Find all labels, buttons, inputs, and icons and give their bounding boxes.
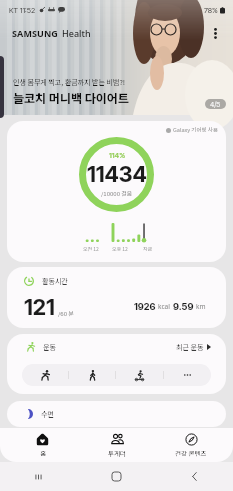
staticText: 활동시간 <box>42 276 68 286</box>
staticText: 오후 12 <box>112 245 128 252</box>
button[interactable]: Cycling <box>116 364 163 386</box>
staticText: /60 분 <box>58 309 74 318</box>
staticText: 1926 <box>134 301 156 312</box>
button[interactable]: 투게더 <box>80 428 154 462</box>
staticText: 운동 <box>43 342 56 352</box>
button[interactable]: Walking <box>69 364 115 386</box>
button[interactable]: 활동시간 <box>7 267 226 328</box>
staticText: Galaxy 기어핏 사용 <box>173 126 218 134</box>
button[interactable]: Back <box>155 462 233 491</box>
staticText: 최근 운동 <box>176 342 204 352</box>
staticText: km <box>196 302 206 311</box>
staticText: Health <box>62 27 91 39</box>
staticText: SAMSUNG <box>12 27 58 39</box>
staticText: 수면 <box>41 409 54 419</box>
staticText: 인생 몸무게 찍고, 환급까지 받는 비법?! <box>13 77 125 87</box>
button[interactable]: Home <box>77 462 155 491</box>
staticText: kcal <box>158 302 170 311</box>
staticText: 11434 <box>87 161 147 188</box>
button[interactable]: Galaxy 기어핏 사용 <box>7 121 226 262</box>
staticText: 홈 <box>40 448 46 457</box>
button[interactable]: 홈 <box>5 428 80 462</box>
button[interactable]: 건강 콘텐츠 <box>154 428 228 462</box>
button[interactable]: Recents <box>0 462 77 491</box>
staticText: 투게더 <box>108 448 126 457</box>
staticText: 114% <box>109 151 126 160</box>
staticText: 78% <box>204 6 218 15</box>
staticText: KT 11:52 <box>9 6 36 15</box>
button[interactable]: 최근 운동 <box>176 342 211 352</box>
button[interactable]: More options <box>205 23 225 43</box>
staticText: 늘코치 머니백 다이어트 <box>13 89 129 106</box>
button[interactable]: 수면 <box>7 401 226 427</box>
staticText: /10000 걸음 <box>101 189 133 198</box>
staticText: 9.59 <box>173 301 194 312</box>
button[interactable]: More exercises <box>164 364 211 386</box>
staticText: 121 <box>24 294 55 321</box>
button[interactable]: Running <box>22 364 68 386</box>
staticText: 오전 12 <box>83 245 99 252</box>
staticText: 4/5 <box>210 100 221 108</box>
staticText: 건강 콘텐츠 <box>175 448 207 457</box>
staticText: 지금 <box>143 245 153 252</box>
